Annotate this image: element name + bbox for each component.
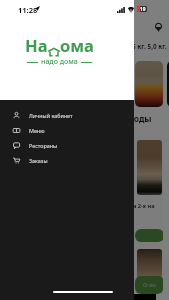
button[interactable]: О ко xyxy=(135,276,163,294)
staticText: О ко xyxy=(143,281,156,289)
button[interactable]: Заказы xyxy=(0,153,134,168)
staticText: ома xyxy=(60,34,94,56)
staticText: Рестораны xyxy=(29,142,58,149)
button[interactable]: Меню xyxy=(0,123,134,138)
button[interactable]: a 2-х на xyxy=(134,137,163,246)
button[interactable]: Рестораны xyxy=(0,138,134,153)
staticText: 19 xyxy=(140,6,146,12)
other: Личный кабинет xyxy=(13,112,20,119)
staticText: Ягоды xyxy=(124,113,152,125)
staticText: Личный кабинет xyxy=(29,112,73,119)
staticText: надо дома xyxy=(41,57,78,67)
button[interactable] xyxy=(135,229,163,242)
staticText: На xyxy=(25,34,48,56)
other: Заказы xyxy=(13,157,20,164)
other: Location xyxy=(155,23,162,32)
staticText: a 2-х на xyxy=(134,202,155,210)
staticText: Меню xyxy=(29,127,45,134)
other: Меню xyxy=(13,127,20,134)
staticText: 5 кг. 5,0 кг. кг. 1 кг xyxy=(132,42,169,51)
other: Рестораны xyxy=(13,142,20,149)
button[interactable]: Личный кабинет xyxy=(0,108,134,123)
button[interactable]: О ко xyxy=(134,246,163,294)
staticText: Заказы xyxy=(29,157,48,164)
staticText: 11:28 xyxy=(18,5,38,15)
